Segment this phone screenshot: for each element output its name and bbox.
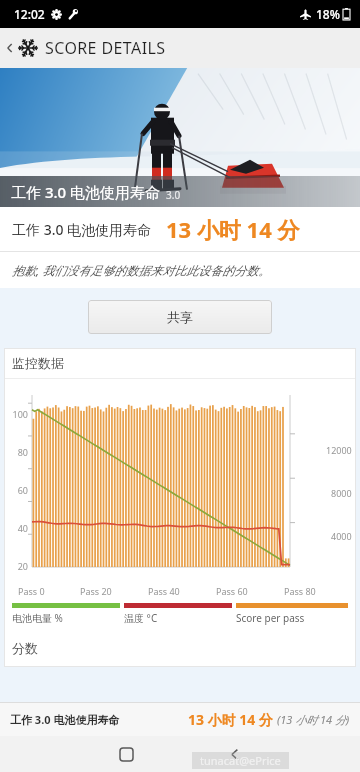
staticText: 12000 <box>326 444 352 456</box>
button[interactable]: Back <box>3 37 166 59</box>
staticText: 20 <box>4 560 28 572</box>
staticText: 共享 <box>167 309 193 325</box>
staticText: Pass 80 <box>284 585 316 597</box>
button[interactable]: Back <box>219 739 249 769</box>
staticText: 13 小时 14 分 <box>166 214 300 244</box>
staticText: 温度 °C <box>124 611 158 625</box>
staticText: 电池电量 % <box>12 611 63 625</box>
staticText: 8000 <box>331 487 352 499</box>
staticText: 12:02 <box>14 6 45 22</box>
staticText: 40 <box>4 522 28 534</box>
staticText: Pass 20 <box>80 585 112 597</box>
staticText: 监控数据 <box>12 355 64 371</box>
staticText: 抱歉, 我们没有足够的数据来对比此设备的分数。 <box>12 262 271 278</box>
staticText: 80 <box>4 446 28 458</box>
staticText: Pass 0 <box>18 585 45 597</box>
staticText: Pass 40 <box>148 585 180 597</box>
staticText: Score per pass <box>236 611 305 625</box>
staticText: 工作 3.0 电池使用寿命 <box>12 220 152 239</box>
staticText: 工作 3.0 电池使用寿命 <box>11 182 161 202</box>
other: Back <box>3 41 17 55</box>
staticText: 100 <box>4 408 28 420</box>
staticText: 工作 3.0 电池使用寿命 <box>10 712 120 727</box>
staticText: 60 <box>4 484 28 496</box>
staticText: 4000 <box>331 530 352 542</box>
button[interactable]: 共享 <box>88 300 272 334</box>
button[interactable]: Home <box>111 739 141 769</box>
staticText: 分数 <box>12 640 38 656</box>
staticText: (13 小时 14 分) <box>277 712 350 727</box>
staticText: tunacat@ePrice <box>200 753 281 768</box>
staticText: 18% <box>316 6 340 22</box>
staticText: 3.0 <box>166 188 181 202</box>
staticText: SCORE DETAILS <box>45 37 166 59</box>
staticText: 13 小时 14 分 <box>188 710 273 729</box>
staticText: Pass 60 <box>216 585 248 597</box>
